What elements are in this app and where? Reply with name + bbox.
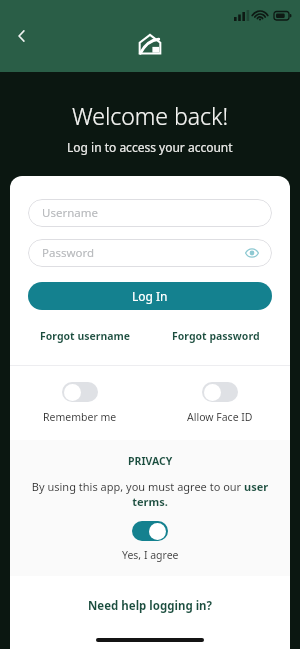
button[interactable]: Forgot password bbox=[170, 327, 262, 345]
button[interactable]: Allow Face ID bbox=[150, 382, 290, 424]
staticText: Need help logging in? bbox=[88, 598, 213, 614]
staticText: Log in to access your account bbox=[67, 139, 233, 155]
staticText: Allow Face ID bbox=[187, 410, 253, 424]
button[interactable]: Password bbox=[28, 239, 272, 267]
staticText: Password bbox=[42, 245, 95, 261]
button[interactable]: Remember me bbox=[10, 382, 150, 424]
staticText: By using this app, you must agree to our… bbox=[30, 479, 270, 509]
staticText: Forgot password bbox=[172, 329, 260, 343]
button[interactable]: Show password bbox=[242, 243, 262, 263]
staticText: Remember me bbox=[43, 410, 117, 424]
staticText: Username bbox=[42, 205, 98, 221]
button[interactable]: Username bbox=[28, 199, 272, 227]
staticText: Yes, I agree bbox=[122, 548, 179, 562]
staticText: Log In bbox=[132, 288, 168, 304]
button[interactable]: Forgot username bbox=[38, 327, 133, 345]
staticText: PRIVACY bbox=[128, 454, 173, 468]
staticText: Forgot username bbox=[40, 329, 131, 343]
button[interactable]: Log In bbox=[28, 282, 272, 310]
button[interactable]: Back bbox=[4, 18, 40, 54]
staticText: Welcome back! bbox=[72, 100, 229, 131]
button[interactable]: Need help logging in? bbox=[10, 598, 290, 614]
